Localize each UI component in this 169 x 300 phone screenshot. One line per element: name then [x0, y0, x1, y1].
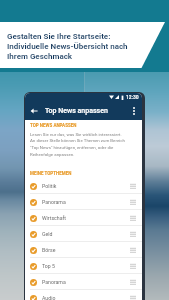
staticText: TOP NEWS ANPASSEN [30, 123, 77, 128]
staticText: Individuelle News-Übersicht nach [7, 42, 128, 51]
staticText: Politik [42, 183, 57, 189]
staticText: Panorama [42, 279, 66, 285]
button[interactable]: Audio [25, 290, 142, 300]
staticText: Audio [42, 295, 56, 300]
staticText: Top News anpassen [45, 107, 108, 115]
staticText: Börse [42, 247, 56, 253]
button[interactable]: Geld [25, 226, 142, 242]
staticText: Geld [42, 231, 53, 237]
button[interactable]: Panorama [25, 274, 142, 290]
staticText: Gestalten Sie Ihre Startseite: [7, 32, 111, 41]
button[interactable]: Wirtschaft [25, 210, 142, 226]
staticText: Ihrem Geschmack [7, 52, 73, 61]
staticText: 12:30 [126, 94, 139, 100]
button[interactable]: Back [28, 105, 40, 117]
button[interactable]: Panorama [25, 194, 142, 210]
staticText: Wirtschaft [42, 215, 67, 221]
staticText: Top 5 [42, 263, 55, 269]
staticText: MEINE TOPTHEMEN [30, 171, 72, 176]
button[interactable]: Top 5 [25, 258, 142, 274]
staticText: Lesen Sie nur das, was Sie wirklich inte… [30, 132, 125, 157]
button[interactable]: More options [127, 104, 141, 118]
button[interactable]: Politik [25, 178, 142, 194]
button[interactable]: Börse [25, 242, 142, 258]
staticText: Panorama [42, 199, 66, 205]
